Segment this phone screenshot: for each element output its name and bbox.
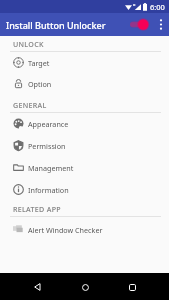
staticText: Target [28,58,50,68]
staticText: Management [28,163,74,173]
staticText: Information [28,185,69,195]
button[interactable]: Target [0,52,169,73]
button[interactable]: Option [0,73,169,94]
button[interactable]: Management [0,157,169,178]
staticText: RELATED APP [13,204,61,214]
staticText: Appearance [28,119,69,129]
button[interactable]: Permission [0,135,169,156]
button[interactable]: Back [26,276,48,298]
staticText: UNLOCK [13,39,44,49]
staticText: Install Button Unlocker [6,19,106,31]
staticText: 6:00 [150,2,165,12]
button[interactable]: Alert Window Checker [0,219,169,240]
button[interactable]: Information [0,179,169,200]
button[interactable]: Home [74,276,96,298]
staticText: GENERAL [13,100,47,110]
staticText: Permission [28,141,66,151]
button[interactable]: Toggle unlocker [126,13,152,36]
button[interactable]: Recents [121,276,143,298]
button[interactable]: Appearance [0,113,169,134]
button[interactable]: More options [152,13,169,36]
staticText: Alert Window Checker [28,225,103,235]
staticText: Option [28,79,52,89]
